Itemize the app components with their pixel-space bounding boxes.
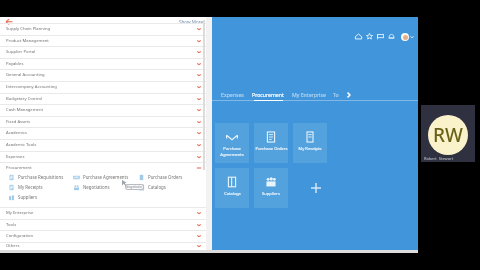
staticText: Academic Tools [6, 142, 37, 148]
staticText: Tools [6, 222, 17, 228]
button[interactable]: Catalogs [134, 183, 206, 191]
button[interactable]: Purchase Requisitions [4, 173, 69, 181]
button[interactable]: Home [353, 31, 364, 42]
button[interactable]: Academics [0, 127, 206, 139]
staticText: Expenses [6, 154, 25, 160]
staticText: Negotiations [83, 184, 110, 190]
button[interactable]: To [329, 89, 343, 102]
button[interactable]: Academic Tools [0, 139, 206, 151]
staticText: Expenses [221, 91, 244, 98]
button[interactable]: Budgetary Control [0, 93, 206, 104]
button[interactable]: My Receipts [293, 123, 327, 163]
button[interactable]: Account [401, 33, 414, 41]
staticText: Supply Chain Planning [6, 26, 51, 32]
staticText: Catalogs [148, 184, 166, 190]
button[interactable]: Back [0, 18, 14, 24]
button[interactable]: Fixed Assets [0, 116, 206, 127]
button[interactable]: Supplier Portal [0, 46, 206, 58]
button[interactable]: Expenses [0, 151, 206, 162]
button[interactable]: Show More [174, 19, 206, 25]
button[interactable]: Catalogs [215, 168, 249, 208]
staticText: Agreements [220, 152, 244, 158]
button[interactable]: Feedback [375, 31, 386, 42]
staticText: My Enterprise [6, 210, 34, 216]
button[interactable]: Suppliers [254, 168, 288, 208]
staticText: Others [6, 243, 20, 249]
button[interactable]: Cash Management [0, 104, 206, 116]
staticText: My Receipts [18, 184, 43, 190]
button[interactable]: Purchase [215, 123, 249, 163]
staticText: To [333, 91, 339, 98]
staticText: Purchase Agreements [83, 174, 129, 180]
staticText: My Receipts [298, 146, 322, 152]
staticText: RW [433, 122, 463, 148]
staticText: Payables [6, 61, 24, 67]
button[interactable]: Suppliers [4, 193, 69, 201]
staticText: Negotiations [126, 185, 143, 189]
button[interactable]: My Enterprise [288, 89, 329, 102]
button[interactable]: Supply Chain Planning [0, 23, 206, 35]
staticText: Product Management [6, 38, 49, 44]
button[interactable]: My Receipts [4, 183, 69, 191]
button[interactable]: Procurement [0, 162, 206, 174]
staticText: Show More [179, 19, 204, 25]
staticText: My Enterprise [292, 91, 326, 98]
button[interactable]: Favorites [364, 31, 375, 42]
button[interactable]: My Enterprise [0, 207, 206, 219]
staticText: Academics [6, 130, 27, 136]
button[interactable]: Others [0, 242, 206, 250]
staticText: Purchase Orders [148, 174, 183, 180]
button[interactable]: Add [293, 168, 327, 208]
staticText: Cash Management [6, 107, 44, 113]
staticText: Procurement [252, 91, 284, 98]
staticText: Catalogs [224, 191, 241, 197]
staticText: General Accounting [6, 72, 45, 78]
button[interactable]: Configuration [0, 230, 206, 242]
button[interactable]: Notifications [386, 31, 397, 42]
staticText: Suppliers [262, 191, 280, 197]
staticText: Purchase Orders [255, 146, 288, 152]
button[interactable]: Tools [0, 219, 206, 230]
button[interactable]: Intercompany Accounting [0, 81, 206, 93]
staticText: Supplier Portal [6, 49, 36, 55]
staticText: Purchase [223, 146, 241, 152]
staticText: Fixed Assets [6, 119, 30, 125]
button[interactable]: Purchase Agreements [69, 173, 134, 181]
button[interactable]: Product Management [0, 35, 206, 46]
button[interactable]: Expenses [216, 89, 248, 102]
staticText: Suppliers [18, 194, 38, 200]
button[interactable]: Purchase Orders [254, 123, 288, 163]
staticText: Robert Stewart [424, 156, 454, 161]
button[interactable]: Negotiations [69, 183, 134, 191]
button[interactable]: Payables [0, 58, 206, 69]
staticText: Purchase Requisitions [18, 174, 64, 180]
staticText: Budgetary Control [6, 96, 43, 102]
button[interactable]: Procurement [248, 89, 288, 102]
button[interactable]: More tabs [343, 89, 354, 101]
staticText: Intercompany Accounting [6, 84, 57, 90]
button[interactable]: General Accounting [0, 69, 206, 81]
button[interactable]: Purchase Orders [134, 173, 206, 181]
staticText: Procurement [6, 165, 32, 171]
staticText: Configuration [6, 233, 34, 239]
